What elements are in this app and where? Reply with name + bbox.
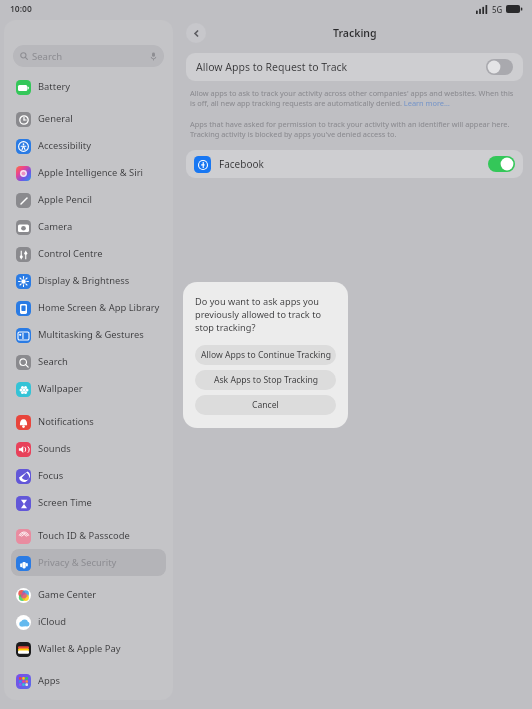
- button[interactable]: Display & Brightness: [11, 267, 166, 294]
- button[interactable]: Back: [186, 23, 206, 43]
- staticText: Do you want to ask apps you previously a…: [195, 295, 336, 334]
- button[interactable]: General: [11, 105, 166, 132]
- staticText: Home Screen & App Library: [38, 301, 160, 314]
- staticText: Search: [32, 50, 63, 63]
- button[interactable]: Camera: [11, 213, 166, 240]
- staticText: Control Centre: [38, 247, 103, 260]
- button[interactable]: Search: [11, 348, 166, 375]
- button[interactable]: Multitasking & Gestures: [11, 321, 166, 348]
- staticText: Apps: [38, 674, 61, 687]
- button[interactable]: Allow Apps to Continue Tracking: [195, 345, 336, 365]
- button[interactable]: Cancel: [195, 395, 336, 415]
- staticText: Battery: [38, 80, 71, 93]
- staticText: Ask Apps to Stop Tracking: [214, 374, 318, 386]
- staticText: iCloud: [38, 615, 67, 628]
- button[interactable]: Facebook: [186, 150, 523, 178]
- staticText: Allow Apps to Continue Tracking: [201, 349, 331, 361]
- button[interactable]: Focus: [11, 462, 166, 489]
- staticText: Camera: [38, 220, 73, 233]
- staticText: Touch ID & Passcode: [38, 529, 130, 542]
- button[interactable]: Accessibility: [11, 132, 166, 159]
- staticText: Apple Intelligence & Siri: [38, 166, 143, 179]
- button[interactable]: Wallpaper: [11, 375, 166, 402]
- staticText: Game Center: [38, 588, 97, 601]
- staticText: Display & Brightness: [38, 274, 130, 287]
- staticText: Wallpaper: [38, 382, 83, 395]
- staticText: General: [38, 112, 73, 125]
- staticText: Allow Apps to Request to Track: [196, 60, 348, 74]
- button[interactable]: Game Center: [11, 581, 166, 608]
- staticText: Multitasking & Gestures: [38, 328, 144, 341]
- staticText: Cancel: [252, 399, 279, 411]
- staticText: Apple Pencil: [38, 193, 92, 206]
- button[interactable]: Touch ID & Passcode: [11, 522, 166, 549]
- button[interactable]: Battery: [11, 73, 166, 100]
- button[interactable]: Home Screen & App Library: [11, 294, 166, 321]
- staticText: Notifications: [38, 415, 94, 428]
- button[interactable]: Apps: [11, 667, 166, 694]
- staticText: Search: [38, 355, 68, 368]
- staticText: Wallet & Apple Pay: [38, 642, 121, 655]
- staticText: Allow apps to ask to track your activity…: [190, 88, 519, 108]
- button[interactable]: Screen Time: [11, 489, 166, 516]
- staticText: Sounds: [38, 442, 71, 455]
- button[interactable]: Wallet & Apple Pay: [11, 635, 166, 662]
- staticText: Accessibility: [38, 139, 91, 152]
- button[interactable]: Apple Intelligence & Siri: [11, 159, 166, 186]
- staticText: Tracking: [333, 26, 377, 40]
- staticText: Facebook: [219, 157, 264, 171]
- button[interactable]: Privacy & Security: [11, 549, 166, 576]
- button[interactable]: Sounds: [11, 435, 166, 462]
- button[interactable]: Search: [13, 45, 164, 67]
- staticText: 5G: [492, 4, 503, 15]
- button[interactable]: Ask Apps to Stop Tracking: [195, 370, 336, 390]
- button[interactable]: iCloud: [11, 608, 166, 635]
- button[interactable]: Control Centre: [11, 240, 166, 267]
- button[interactable]: Apple Pencil: [11, 186, 166, 213]
- staticText: 10:00: [10, 3, 32, 15]
- staticText: Screen Time: [38, 496, 92, 509]
- staticText: Focus: [38, 469, 64, 482]
- button[interactable]: Notifications: [11, 408, 166, 435]
- staticText: Apps that have asked for permission to t…: [190, 119, 519, 139]
- button[interactable]: Allow Apps to Request to Track: [186, 53, 523, 81]
- staticText: Privacy & Security: [38, 556, 117, 569]
